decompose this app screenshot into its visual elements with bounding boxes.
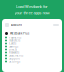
staticText: Westbank Plus xyxy=(10,32,29,35)
staticText: your three apps now xyxy=(14,10,49,15)
staticText: Payments xyxy=(9,36,21,39)
button[interactable]: Payments xyxy=(2,36,62,39)
staticText: Support xyxy=(9,57,20,60)
button[interactable]: Statements xyxy=(2,54,62,57)
staticText: Rewards xyxy=(9,51,19,54)
button[interactable]: Transfers xyxy=(2,39,62,42)
staticText: Account xyxy=(11,23,22,27)
button[interactable]: Account xyxy=(2,19,62,31)
button[interactable]: Settings xyxy=(2,60,62,63)
button[interactable]: Support xyxy=(2,57,62,60)
staticText: Invest xyxy=(9,48,17,51)
staticText: Load Westbank for xyxy=(16,4,48,9)
button[interactable]: Cards xyxy=(2,42,62,45)
staticText: Savings xyxy=(9,45,18,48)
staticText: Settings xyxy=(9,60,20,63)
staticText: Cards xyxy=(9,42,16,45)
button[interactable]: Invest xyxy=(2,48,62,51)
button[interactable]: Savings xyxy=(2,45,62,48)
button[interactable]: Rewards xyxy=(2,51,62,54)
staticText: Statements xyxy=(9,54,23,57)
button[interactable]: Westbank Plus xyxy=(2,31,62,36)
staticText: Transfers xyxy=(9,39,20,42)
